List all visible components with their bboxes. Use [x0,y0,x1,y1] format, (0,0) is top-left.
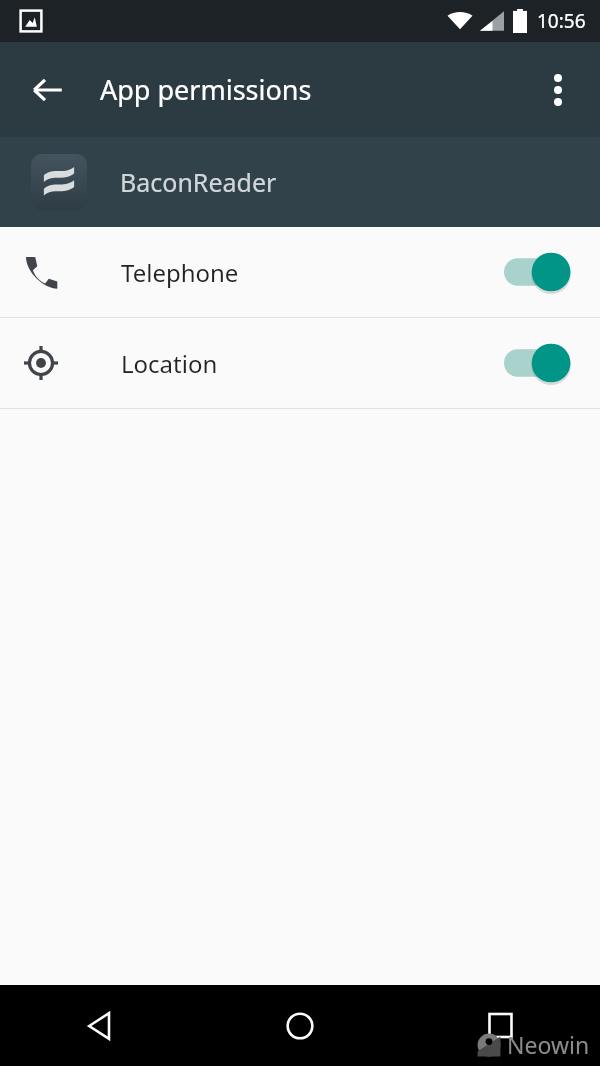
button[interactable]: Telephone permission toggle [496,242,586,302]
button[interactable]: Telephone [0,227,600,317]
staticText: App permissions [100,71,312,108]
button[interactable]: Location permission toggle [496,333,586,393]
staticText: 10:56 [537,8,586,34]
button[interactable]: Back [20,62,76,118]
staticText: BaconReader [120,165,277,199]
staticText: Location [121,347,496,380]
button[interactable]: More options [532,64,584,116]
button[interactable]: Location [0,318,600,408]
button[interactable]: Recent apps [400,985,600,1066]
button[interactable]: BaconReader [0,137,600,227]
staticText: Telephone [121,256,496,289]
staticText: Neowin [507,1029,590,1060]
button[interactable]: Home [200,985,400,1066]
button[interactable]: Back [0,985,200,1066]
